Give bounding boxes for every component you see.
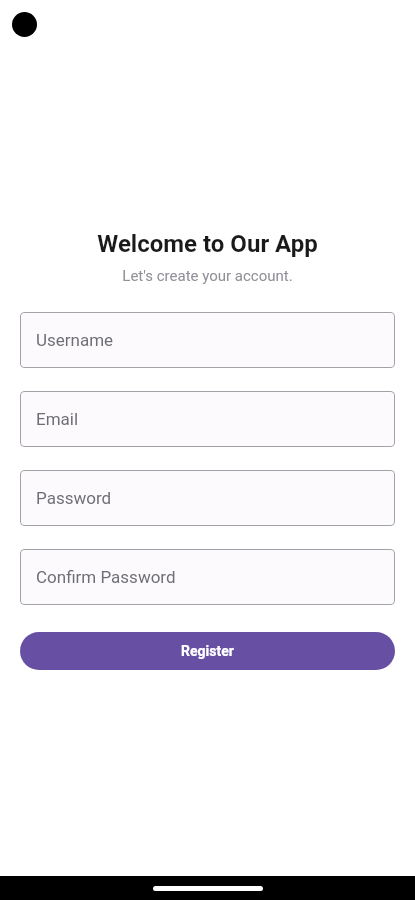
staticText: Username <box>36 330 114 350</box>
staticText: Register <box>181 643 234 659</box>
staticText: Welcome to Our App <box>0 230 415 258</box>
button[interactable]: Confirm Password <box>20 549 395 605</box>
staticText: Password <box>36 488 112 508</box>
other: Front camera <box>12 12 37 37</box>
button[interactable]: Username <box>20 312 395 368</box>
staticText: Email <box>36 409 79 429</box>
button[interactable]: Password <box>20 470 395 526</box>
staticText: Confirm Password <box>36 567 176 587</box>
button[interactable]: Register <box>20 632 395 670</box>
button[interactable]: Email <box>20 391 395 447</box>
staticText: Let's create your account. <box>0 267 415 285</box>
